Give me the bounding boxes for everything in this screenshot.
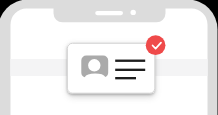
button[interactable]: Verified profile card [0, 0, 218, 115]
